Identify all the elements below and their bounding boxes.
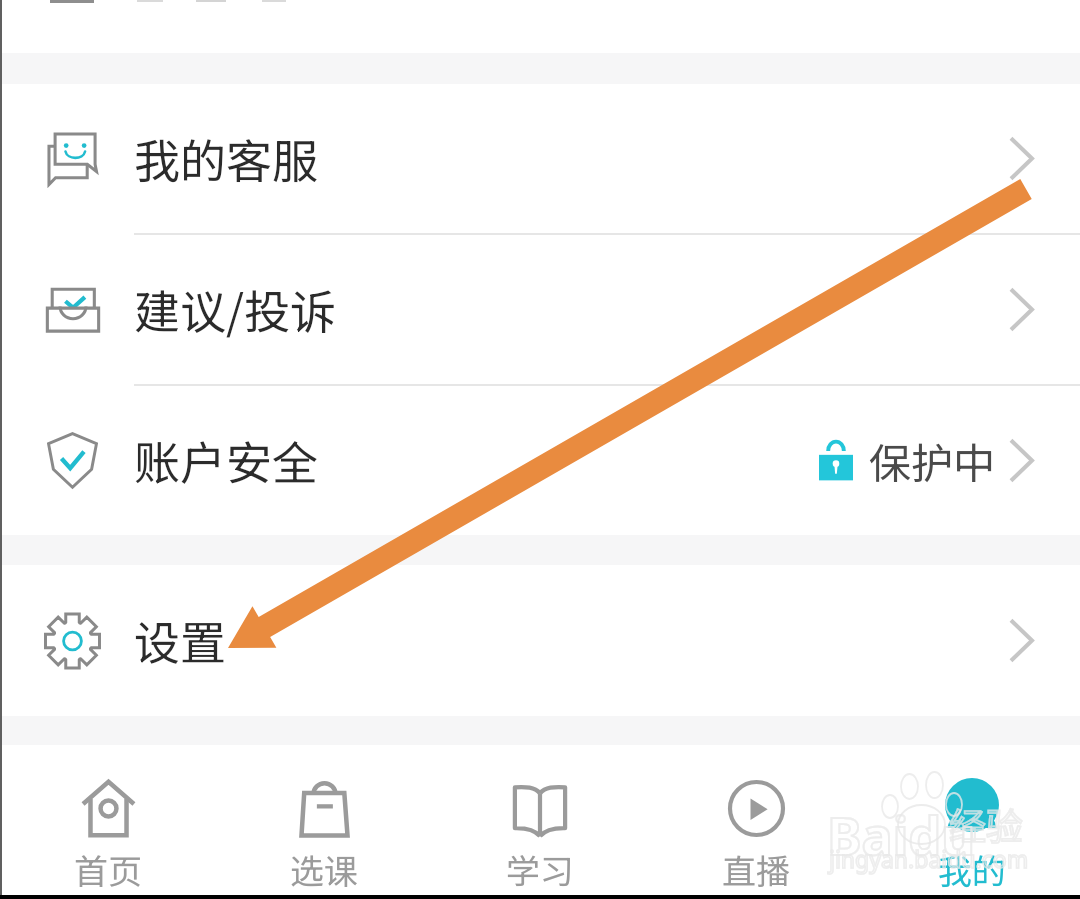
button[interactable]: 我的 (864, 745, 1080, 899)
staticText: 设置 (134, 607, 226, 674)
button[interactable]: 学习 (432, 745, 648, 899)
button[interactable]: 我的客服 (0, 84, 1080, 233)
staticText: 选课 (290, 845, 358, 894)
staticText: 经验 (949, 797, 1023, 851)
staticText: 首页 (74, 845, 142, 894)
button[interactable]: 直播 (648, 745, 864, 899)
button[interactable]: 首页 (0, 745, 216, 899)
staticText: 我的 (938, 845, 1006, 894)
button[interactable]: 建议/投诉 (0, 235, 1080, 384)
staticText: 建议/投诉 (134, 276, 337, 343)
staticText: 直播 (722, 845, 790, 894)
button[interactable]: 设置 (0, 565, 1080, 716)
staticText: 保护中 (869, 430, 996, 491)
staticText: Baidu (827, 799, 975, 870)
button[interactable]: 选课 (216, 745, 432, 899)
button[interactable]: 账户安全 (0, 386, 1080, 535)
staticText: 我的客服 (134, 125, 318, 192)
staticText: 账户安全 (134, 427, 318, 494)
staticText: jingyan.baidu.com (829, 843, 1029, 874)
staticText: 学习 (506, 845, 574, 894)
